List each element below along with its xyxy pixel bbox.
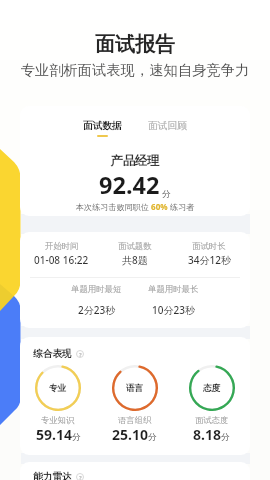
staticText: 面试时长 [192, 241, 226, 252]
staticText: 共8题 [122, 253, 148, 267]
staticText: 2分23秒 [78, 303, 116, 317]
staticText: 60% [151, 201, 168, 212]
staticText: 分 [221, 432, 230, 443]
staticText: 练习者 [168, 201, 195, 212]
staticText: 单题用时最长 [148, 284, 199, 295]
staticText: 分 [72, 432, 81, 443]
button[interactable]: 说明 [76, 350, 84, 358]
button[interactable]: 面试回顾 [135, 120, 200, 132]
button[interactable]: 说明 [76, 473, 84, 480]
staticText: 10分23秒 [152, 303, 195, 317]
staticText: ? [79, 474, 82, 480]
staticText: 面试报告 [0, 32, 270, 57]
staticText: 专业剖析面试表现，速知自身竞争力 [0, 61, 270, 79]
button[interactable]: 面试数据 [70, 120, 135, 137]
staticText: 开始时间 [45, 241, 79, 252]
staticText: 语言 [126, 383, 144, 394]
staticText: 59.14 [36, 425, 72, 444]
staticText: 语言组织 [118, 415, 152, 425]
staticText: 01-08 16:22 [34, 253, 89, 267]
staticText: 态度 [203, 383, 221, 394]
staticText: 面试态度 [195, 415, 229, 425]
staticText: 分 [162, 189, 171, 200]
staticText: 面试回顾 [148, 120, 187, 132]
staticText: 面试题数 [118, 241, 152, 252]
staticText: 产品经理 [20, 153, 250, 168]
staticText: 25.10 [112, 425, 148, 444]
staticText: 面试数据 [83, 120, 122, 132]
staticText: 综合表现 [33, 348, 72, 360]
staticText: 92.42 [99, 169, 160, 201]
staticText: 8.18 [193, 425, 221, 444]
staticText: 单题用时最短 [71, 284, 122, 295]
staticText: 34分12秒 [188, 253, 231, 267]
staticText: 专业 [49, 383, 67, 394]
staticText: 专业知识 [41, 415, 75, 425]
staticText: 分 [148, 432, 157, 443]
staticText: ? [79, 351, 82, 358]
staticText: 本次练习击败同职位 [76, 201, 151, 212]
staticText: 能力雷达 [33, 471, 72, 480]
